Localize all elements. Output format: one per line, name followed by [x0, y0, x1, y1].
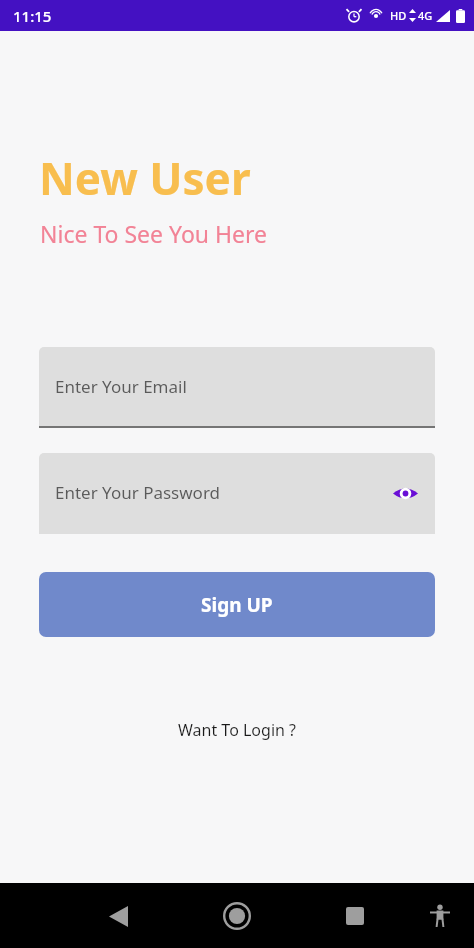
staticText: HD	[390, 8, 407, 23]
button[interactable]: Recent apps	[331, 892, 379, 940]
button[interactable]: Enter Your Email	[39, 347, 435, 428]
staticText: 4G	[418, 8, 433, 23]
staticText: Enter Your Email	[55, 375, 187, 398]
button[interactable]: Enter Your Password	[39, 453, 435, 534]
button[interactable]: Home	[213, 892, 261, 940]
button[interactable]: Want To Login ?	[166, 713, 309, 747]
staticText: Want To Login ?	[178, 719, 297, 741]
staticText: New User	[39, 148, 251, 208]
staticText: 11:15	[13, 6, 52, 26]
staticText: Sign UP	[201, 592, 273, 618]
button[interactable]: Show password	[389, 477, 421, 509]
button[interactable]: Sign UP	[39, 572, 435, 637]
button[interactable]: Accessibility	[420, 896, 460, 936]
staticText: Nice To See You Here	[40, 218, 268, 249]
staticText: Enter Your Password	[55, 481, 221, 504]
button[interactable]: Back	[94, 892, 142, 940]
